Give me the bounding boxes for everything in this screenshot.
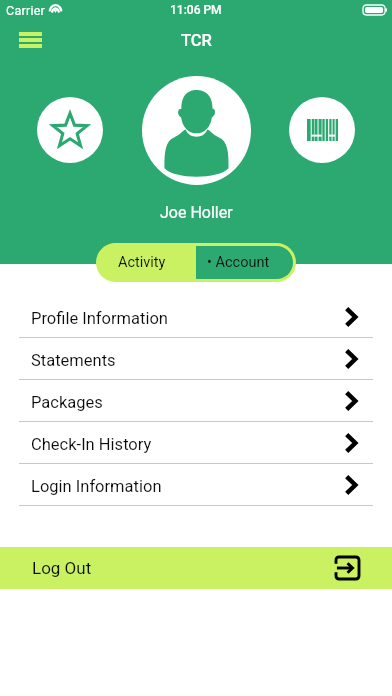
staticText: • Account — [207, 254, 270, 271]
staticText: Log Out — [32, 558, 336, 578]
staticText: 11:06 PM — [170, 3, 222, 17]
button[interactable]: Rewards — [37, 97, 103, 163]
staticText: Activity — [118, 254, 166, 271]
button[interactable]: Menu — [9, 19, 51, 61]
button[interactable]: Check-In History — [0, 422, 392, 463]
staticText: Joe Holler — [160, 203, 233, 222]
button[interactable]: Log Out — [0, 547, 392, 589]
button[interactable]: • Account — [196, 246, 293, 279]
button[interactable]: Profile Information — [0, 296, 392, 337]
staticText: Carrier — [6, 3, 46, 18]
staticText: Check-In History — [31, 435, 344, 454]
button[interactable]: Activity — [96, 243, 196, 282]
button[interactable]: Login Information — [0, 464, 392, 505]
staticText: Login Information — [31, 477, 344, 496]
button[interactable]: Profile photo — [142, 76, 251, 185]
staticText: Profile Information — [31, 309, 344, 328]
staticText: Packages — [31, 393, 344, 412]
button[interactable]: Membership barcode — [289, 97, 355, 163]
button[interactable]: Statements — [0, 338, 392, 379]
staticText: Statements — [31, 351, 344, 370]
button[interactable]: Packages — [0, 380, 392, 421]
staticText: TCR — [181, 31, 212, 50]
